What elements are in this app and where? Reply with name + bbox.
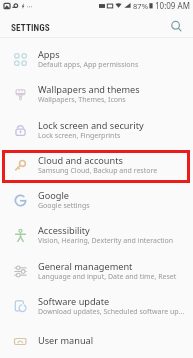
staticText: Default apps, App permissions xyxy=(38,60,193,70)
button[interactable]: Google xyxy=(0,183,193,218)
button[interactable]: Lock screen and security xyxy=(0,113,193,148)
staticText: Vision, Hearing, Dexterity and interacti… xyxy=(38,236,193,246)
button[interactable]: General management xyxy=(0,254,193,289)
staticText: 10:09 AM xyxy=(155,0,190,11)
staticText: Accessibility xyxy=(38,224,90,237)
button[interactable]: Apps xyxy=(0,42,193,77)
staticText: Language and input, Date and time, Reset xyxy=(38,272,193,282)
staticText: Wallpapers and themes xyxy=(38,83,140,96)
staticText: User manual xyxy=(38,334,94,347)
button[interactable]: Accessibility xyxy=(0,218,193,253)
staticText: Cloud and accounts xyxy=(38,154,123,167)
staticText: 87% xyxy=(133,1,148,11)
staticText: General management xyxy=(38,260,133,273)
staticText: Lock screen and security xyxy=(38,119,144,132)
staticText: Google settings xyxy=(38,201,193,211)
staticText: Samsung Cloud, Backup and restore xyxy=(38,166,193,176)
staticText: Wallpapers, Themes, Icons xyxy=(38,95,193,105)
staticText: Google xyxy=(38,189,70,202)
staticText: Lock screen, Fingerprints xyxy=(38,131,193,141)
button[interactable]: Cloud and accounts xyxy=(0,148,193,183)
staticText: Apps xyxy=(38,48,60,61)
staticText: Download updates, Scheduled software up.… xyxy=(38,307,193,317)
button[interactable]: Search xyxy=(167,17,185,35)
button[interactable]: User manual xyxy=(0,324,193,358)
staticText: SETTINGS xyxy=(11,22,50,33)
button[interactable]: Wallpapers and themes xyxy=(0,77,193,112)
button[interactable]: Software update xyxy=(0,289,193,324)
staticText: Software update xyxy=(38,295,110,308)
